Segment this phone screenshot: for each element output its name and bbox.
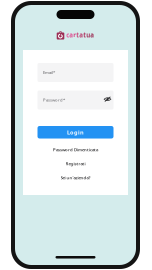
button[interactable]: Sei un'azienda? — [37, 173, 113, 182]
staticText: a — [79, 31, 83, 39]
staticText: c — [66, 31, 69, 39]
staticText: Password Dimenticata — [53, 147, 98, 152]
staticText: Email* — [43, 70, 55, 75]
button[interactable]: Show password — [104, 97, 112, 103]
staticText: Password* — [43, 97, 65, 103]
staticText: Registrati — [65, 161, 85, 166]
staticText: u — [86, 31, 90, 39]
button[interactable]: Password Dimenticata — [37, 145, 113, 154]
staticText: Login — [67, 128, 84, 136]
staticText: a — [90, 31, 94, 39]
staticText: t — [76, 31, 79, 39]
staticText: t — [83, 31, 86, 39]
button[interactable]: Registrati — [37, 159, 113, 168]
staticText: r — [73, 31, 76, 39]
staticText: a — [69, 31, 73, 39]
button[interactable]: Login — [37, 126, 113, 138]
staticText: Sei un'azienda? — [60, 175, 90, 180]
